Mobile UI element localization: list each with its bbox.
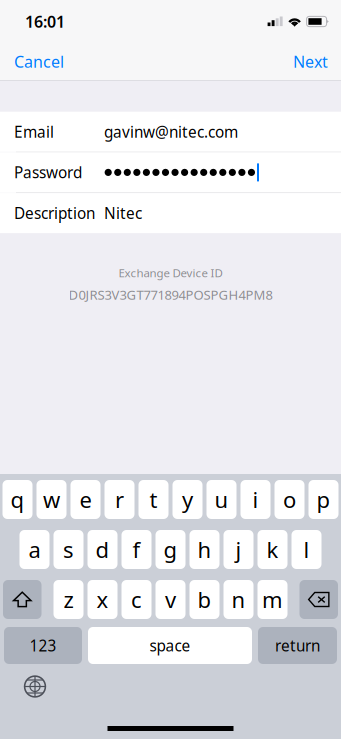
staticText: d [95, 534, 109, 564]
button[interactable]: z [53, 580, 83, 619]
button[interactable]: Email [0, 112, 341, 152]
staticText: gavinw@nitec.com [104, 121, 238, 142]
button[interactable]: u [206, 480, 236, 519]
button[interactable]: v [155, 580, 185, 619]
staticText: b [197, 584, 211, 614]
staticText: r [115, 484, 124, 514]
button[interactable]: Shift [3, 580, 41, 619]
button[interactable]: a [19, 530, 49, 569]
staticText: v [165, 584, 176, 614]
button[interactable]: Next [285, 45, 328, 78]
staticText: s [63, 534, 74, 564]
button[interactable]: r [104, 480, 134, 519]
staticText: z [63, 584, 73, 614]
staticText: space [149, 635, 190, 656]
staticText: a [28, 534, 40, 564]
button[interactable]: o [274, 480, 304, 519]
staticText: c [131, 584, 142, 614]
button[interactable]: n [223, 580, 253, 619]
button[interactable]: y [172, 480, 202, 519]
button[interactable]: c [121, 580, 151, 619]
staticText: j [235, 534, 241, 564]
staticText: g [163, 534, 177, 564]
button[interactable]: 123 [4, 627, 82, 664]
staticText: Password [14, 162, 82, 183]
button[interactable]: Next keyboard [23, 675, 46, 698]
staticText: Email [14, 121, 54, 142]
button[interactable]: s [53, 530, 83, 569]
button[interactable]: w [36, 480, 66, 519]
staticText: n [231, 584, 245, 614]
button[interactable]: t [138, 480, 168, 519]
button[interactable]: j [223, 530, 253, 569]
button[interactable]: i [240, 480, 270, 519]
button[interactable]: return [258, 627, 337, 664]
staticText: i [252, 484, 258, 514]
staticText: q [10, 484, 24, 514]
staticText: y [182, 484, 193, 514]
button[interactable]: q [2, 480, 32, 519]
button[interactable]: Description [0, 193, 341, 233]
staticText: return [275, 635, 320, 656]
staticText: Description [14, 203, 95, 224]
staticText: h [197, 534, 211, 564]
button[interactable]: p [308, 480, 338, 519]
button[interactable]: x [87, 580, 117, 619]
button[interactable]: Password [0, 152, 341, 192]
staticText: Nitec [104, 203, 142, 224]
staticText: D0JRS3V3GT771894POSPGH4PM8 [68, 286, 272, 303]
button[interactable]: Delete [299, 580, 338, 619]
staticText: x [96, 584, 108, 614]
button[interactable]: g [155, 530, 185, 569]
button[interactable]: f [121, 530, 151, 569]
staticText: 123 [29, 635, 56, 656]
button[interactable]: l [291, 530, 321, 569]
staticText: u [214, 484, 228, 514]
staticText: f [132, 534, 140, 564]
staticText: o [283, 484, 296, 514]
staticText: 16:01 [25, 11, 65, 32]
button[interactable]: Cancel [14, 45, 72, 78]
button[interactable]: m [257, 580, 287, 619]
staticText: m [262, 584, 283, 614]
staticText: l [303, 534, 309, 564]
staticText: e [79, 484, 91, 514]
button[interactable]: k [257, 530, 287, 569]
staticText: w [43, 484, 60, 514]
button[interactable]: e [70, 480, 100, 519]
button[interactable]: b [189, 580, 219, 619]
staticText: p [316, 484, 330, 514]
staticText: Cancel [14, 51, 64, 72]
button[interactable]: h [189, 530, 219, 569]
staticText: Exchange Device ID [118, 265, 222, 281]
staticText: t [149, 484, 157, 514]
button[interactable]: d [87, 530, 117, 569]
button[interactable]: space [88, 627, 252, 664]
staticText: Next [293, 51, 328, 72]
staticText: k [266, 534, 278, 564]
